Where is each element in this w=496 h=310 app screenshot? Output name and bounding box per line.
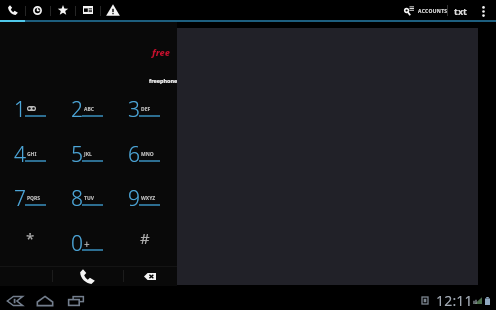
button[interactable]: txt (448, 0, 474, 22)
staticText: ABC (84, 106, 94, 113)
button[interactable]: ACCOUNTS (399, 0, 453, 22)
button[interactable]: 3 (116, 82, 173, 126)
staticText: 6 (128, 140, 140, 169)
staticText: 2 (71, 95, 83, 124)
button[interactable]: 0 (59, 216, 116, 260)
button[interactable]: Call (52, 267, 123, 286)
staticText: GHI (27, 151, 37, 158)
staticText: * (26, 228, 35, 248)
staticText: 0 (71, 229, 83, 258)
button[interactable]: 5 (59, 127, 116, 171)
button[interactable]: 4 (2, 127, 59, 171)
staticText: # (140, 228, 150, 248)
button[interactable]: 2 (59, 82, 116, 126)
staticText: 5 (71, 140, 83, 169)
staticText: 7 (14, 184, 26, 213)
staticText: DEF (141, 106, 151, 113)
button[interactable]: 8 (59, 171, 116, 215)
button[interactable]: Contacts (75, 0, 100, 22)
staticText: 1 (14, 95, 26, 124)
button[interactable]: 7 (2, 171, 59, 215)
button[interactable]: Delete (123, 267, 176, 286)
button[interactable]: Status (422, 291, 490, 310)
button[interactable]: Voicemail (100, 0, 125, 22)
button[interactable]: Favorites (50, 0, 75, 22)
staticText: + (84, 237, 90, 251)
staticText: 12:11 (436, 291, 473, 310)
staticText: WXYZ (141, 195, 156, 202)
staticText: ACCOUNTS (418, 8, 448, 15)
button[interactable]: # (116, 216, 173, 260)
button[interactable]: Home (29, 290, 60, 310)
button[interactable]: 6 (116, 127, 173, 171)
staticText: 3 (128, 95, 140, 124)
button[interactable]: Dialer (0, 0, 25, 22)
button[interactable]: 9 (116, 171, 173, 215)
button[interactable]: Back (0, 290, 29, 310)
staticText: txt (454, 5, 468, 17)
button[interactable]: More options (472, 0, 495, 22)
button[interactable]: Recent apps (60, 290, 91, 310)
staticText: freephone (149, 77, 178, 84)
button[interactable]: Call log (25, 0, 50, 22)
staticText: JKL (84, 151, 92, 158)
button[interactable]: * (2, 216, 59, 260)
staticText: 4 (14, 140, 26, 169)
staticText: TUV (84, 195, 94, 202)
button[interactable]: 1 (2, 82, 59, 126)
staticText: MNO (141, 151, 154, 158)
staticText: 9 (128, 184, 140, 213)
staticText: free (152, 46, 170, 58)
staticText: 8 (71, 184, 83, 213)
staticText: PQRS (27, 195, 41, 202)
